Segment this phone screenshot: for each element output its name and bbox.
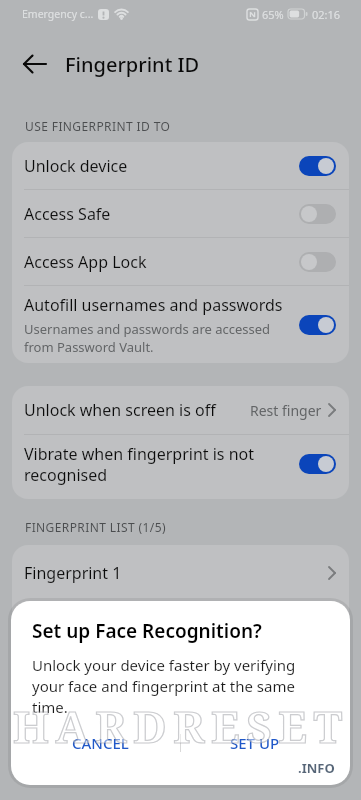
- staticText: Unlock your device faster by verifying y…: [32, 655, 296, 718]
- button[interactable]: Access Safe: [12, 190, 349, 237]
- button[interactable]: [299, 156, 336, 176]
- staticText: FINGERPRINT LIST (1/5): [25, 519, 166, 535]
- staticText: .INFO: [298, 759, 335, 777]
- staticText: Access App Lock: [24, 251, 299, 273]
- staticText: Fingerprint 1: [24, 562, 328, 584]
- staticText: Vibrate when fingerprint is not recognis…: [24, 443, 299, 486]
- staticText: Emergency c...: [22, 7, 94, 21]
- staticText: USE FINGERPRINT ID TO: [25, 118, 171, 134]
- staticText: Usernames and passwords are accessed fro…: [24, 320, 271, 356]
- button[interactable]: Access App Lock: [12, 238, 349, 285]
- staticText: HARDRESET: [13, 696, 349, 756]
- button[interactable]: Autofill usernames and passwords: [12, 286, 349, 363]
- button[interactable]: SET UP: [181, 722, 329, 764]
- button[interactable]: Vibrate when fingerprint is not recognis…: [12, 435, 349, 499]
- staticText: Autofill usernames and passwords: [24, 294, 283, 316]
- staticText: HARDRESET: [13, 696, 349, 756]
- button[interactable]: [24, 55, 46, 73]
- button[interactable]: [299, 252, 336, 272]
- staticText: 65%: [262, 7, 284, 22]
- button[interactable]: [299, 454, 336, 474]
- staticText: Set up Face Recognition?: [32, 618, 262, 644]
- button[interactable]: Fingerprint 1: [12, 545, 349, 601]
- staticText: CANCEL: [72, 733, 129, 753]
- button[interactable]: [299, 315, 336, 335]
- button[interactable]: Unlock when screen is off: [12, 386, 349, 434]
- staticText: Fingerprint ID: [65, 51, 200, 78]
- staticText: Rest finger: [250, 401, 322, 420]
- button[interactable]: CANCEL: [32, 722, 180, 764]
- staticText: Unlock when screen is off: [24, 399, 250, 421]
- staticText: 02:16: [312, 7, 341, 22]
- staticText: Access Safe: [24, 203, 299, 225]
- button[interactable]: Unlock device: [12, 142, 349, 189]
- staticText: SET UP: [230, 733, 280, 753]
- staticText: Unlock device: [24, 155, 299, 177]
- button[interactable]: [299, 204, 336, 224]
